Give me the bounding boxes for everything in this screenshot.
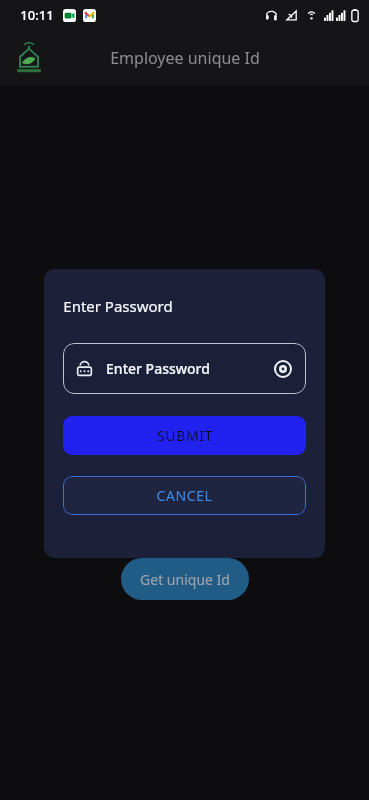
staticText: Enter Password [106, 359, 210, 378]
staticText: CANCEL [156, 486, 213, 505]
button[interactable]: SUBMIT [63, 416, 306, 455]
button[interactable]: CANCEL [63, 476, 306, 515]
button[interactable]: Get unique Id [121, 558, 249, 600]
staticText: 10:11 [20, 6, 54, 24]
staticText: Get unique Id [140, 570, 230, 589]
staticText: SUBMIT [157, 426, 213, 445]
button[interactable]: Enter Password [63, 343, 306, 394]
staticText: Enter Password [63, 296, 173, 316]
button[interactable]: RJFCARE logo [11, 40, 47, 76]
button[interactable]: Toggle password visibility [273, 359, 293, 379]
staticText: Employee unique Id [110, 47, 260, 69]
